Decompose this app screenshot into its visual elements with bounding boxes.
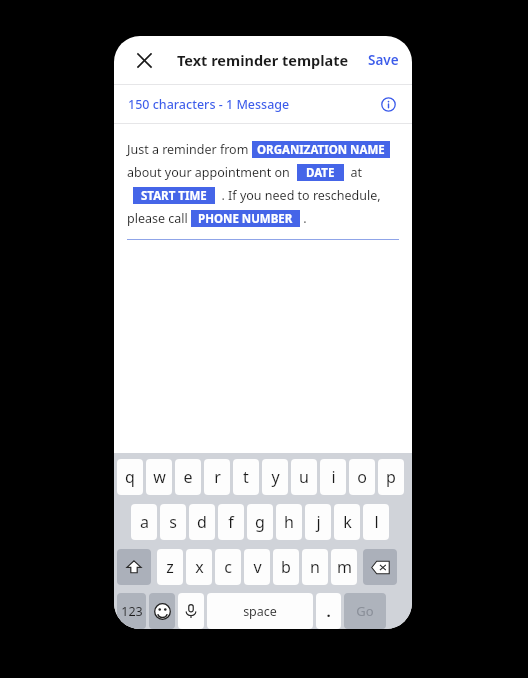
button[interactable]: g [247,504,273,540]
staticText: t [243,466,249,488]
button[interactable]: f [218,504,244,540]
staticText: please call [127,210,191,227]
staticText: v [253,556,262,578]
button[interactable]: a [131,504,157,540]
staticText: 123 [121,603,143,620]
staticText: START TIME [141,188,207,204]
button[interactable]: Close [126,42,162,78]
staticText: p [386,466,396,488]
staticText: PHONE NUMBER [198,211,293,227]
staticText: k [343,511,352,533]
staticText: . [300,210,307,227]
staticText: c [224,556,232,578]
button[interactable]: DATE [297,164,344,181]
button[interactable]: . [316,593,341,629]
staticText: ORGANIZATION NAME [257,142,385,158]
staticText: h [284,511,294,533]
staticText: at [344,164,363,181]
button[interactable]: m [331,549,357,585]
button[interactable]: e [175,459,201,495]
button[interactable]: o [349,459,375,495]
staticText: Save [368,51,399,69]
button[interactable]: z [157,549,183,585]
staticText: o [357,466,367,488]
staticText: u [299,466,309,488]
button[interactable]: PHONE NUMBER [191,210,300,227]
button[interactable]: 123 [117,593,146,629]
button[interactable]: j [305,504,331,540]
staticText: s [169,511,177,533]
staticText: e [183,466,193,488]
staticText: x [195,556,204,578]
staticText: DATE [306,165,335,181]
staticText: f [228,511,234,533]
staticText: space [243,603,277,620]
staticText: a [140,511,149,533]
staticText: w [153,466,166,488]
button[interactable]: k [334,504,360,540]
staticText: z [166,556,174,578]
staticText: m [337,556,352,578]
staticText: Text reminder template [177,50,349,70]
button[interactable]: START TIME [133,187,215,204]
button[interactable]: s [160,504,186,540]
button[interactable]: i [320,459,346,495]
button[interactable]: Go [344,593,386,629]
button[interactable]: x [186,549,212,585]
button[interactable]: l [363,504,389,540]
staticText: y [271,466,280,488]
button[interactable]: q [117,459,143,495]
staticText: i [331,466,336,488]
button[interactable]: n [302,549,328,585]
staticText: about your appointment on [127,164,297,181]
staticText: r [214,466,221,488]
staticText: Go [356,602,374,620]
button[interactable]: u [291,459,317,495]
staticText: d [197,511,207,533]
staticText: Just a reminder from [127,141,252,158]
button[interactable]: h [276,504,302,540]
button[interactable]: p [378,459,404,495]
staticText: q [125,466,135,488]
button[interactable]: b [273,549,299,585]
button[interactable]: Shift [117,549,151,585]
button[interactable]: Save [355,41,412,79]
staticText: b [281,556,291,578]
button[interactable]: Voice input [178,593,204,629]
button[interactable]: r [204,459,230,495]
staticText: . If you need to reschedule, [215,187,381,204]
button[interactable]: Backspace [363,549,397,585]
button[interactable]: w [146,459,172,495]
button[interactable]: y [262,459,288,495]
button[interactable]: space [207,593,313,629]
staticText: 150 characters - 1 Message [128,96,290,113]
staticText: j [316,511,321,533]
button[interactable]: ORGANIZATION NAME [252,141,390,158]
button[interactable]: v [244,549,270,585]
staticText: . [326,601,331,621]
button[interactable]: c [215,549,241,585]
button[interactable]: d [189,504,215,540]
staticText: l [374,511,379,533]
staticText: g [255,511,265,533]
button[interactable]: Emoji [149,593,175,629]
button[interactable]: t [233,459,259,495]
staticText: n [310,556,320,578]
button[interactable]: Information [374,90,402,118]
